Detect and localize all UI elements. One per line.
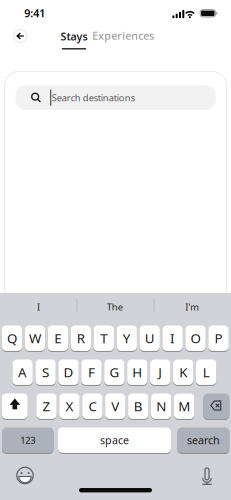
button[interactable]: L: [196, 359, 216, 385]
staticText: L: [203, 363, 210, 381]
button[interactable]: search: [177, 427, 229, 453]
button[interactable]: Stays: [60, 29, 87, 49]
button[interactable]: Z: [36, 393, 57, 419]
staticText: E: [54, 329, 61, 347]
button[interactable]: E: [48, 325, 68, 351]
staticText: I: [37, 301, 40, 313]
button[interactable]: H: [127, 359, 147, 385]
staticText: 123: [20, 434, 35, 446]
staticText: R: [77, 329, 85, 347]
staticText: N: [156, 397, 166, 415]
staticText: I'm: [185, 301, 199, 313]
staticText: P: [214, 329, 222, 347]
button[interactable]: D: [58, 359, 79, 385]
staticText: W: [29, 329, 41, 347]
button[interactable]: Shift: [2, 393, 28, 419]
button[interactable]: V: [105, 393, 125, 419]
button[interactable]: Q: [2, 325, 22, 351]
button[interactable]: W: [25, 325, 45, 351]
button[interactable]: M: [174, 393, 194, 419]
button[interactable]: space: [58, 427, 171, 453]
staticText: Q: [7, 329, 17, 347]
button[interactable]: K: [173, 359, 193, 385]
button[interactable]: Back: [14, 29, 27, 42]
staticText: G: [109, 363, 119, 381]
button[interactable]: T: [93, 325, 114, 351]
staticText: K: [179, 363, 187, 381]
staticText: H: [132, 363, 142, 381]
staticText: Experiences: [92, 28, 154, 43]
staticText: C: [88, 397, 96, 415]
staticText: M: [178, 397, 190, 415]
button[interactable]: Dictation: [199, 467, 215, 485]
button[interactable]: F: [81, 359, 102, 385]
staticText: O: [190, 329, 200, 347]
button[interactable]: Experiences: [92, 28, 154, 43]
button[interactable]: S: [35, 359, 56, 385]
button[interactable]: C: [82, 393, 103, 419]
staticText: The: [107, 301, 123, 313]
staticText: X: [65, 397, 73, 415]
button[interactable]: Search destinations: [15, 85, 216, 110]
staticText: T: [100, 329, 107, 347]
staticText: search: [187, 433, 220, 447]
staticText: I: [170, 329, 175, 347]
staticText: F: [88, 363, 95, 381]
staticText: J: [158, 363, 162, 381]
button[interactable]: U: [139, 325, 160, 351]
button[interactable]: I'm: [155, 297, 229, 317]
staticText: Search destinations: [52, 91, 135, 104]
button[interactable]: B: [128, 393, 148, 419]
staticText: D: [63, 363, 73, 381]
staticText: V: [111, 397, 119, 415]
button[interactable]: P: [208, 325, 229, 351]
staticText: Z: [42, 397, 50, 415]
button[interactable]: N: [151, 393, 171, 419]
button[interactable]: The: [78, 297, 152, 317]
staticText: space: [100, 433, 129, 447]
staticText: B: [134, 397, 143, 415]
button[interactable]: 123: [2, 427, 53, 453]
staticText: 9:41: [24, 6, 45, 20]
staticText: S: [42, 363, 49, 381]
button[interactable]: G: [104, 359, 125, 385]
staticText: Y: [123, 329, 131, 347]
button[interactable]: Y: [116, 325, 137, 351]
button[interactable]: I: [162, 325, 183, 351]
button[interactable]: Emoji: [15, 466, 35, 485]
staticText: A: [18, 363, 27, 381]
button[interactable]: R: [71, 325, 91, 351]
button[interactable]: Delete: [203, 393, 229, 419]
staticText: Stays: [60, 29, 87, 44]
button[interactable]: J: [150, 359, 170, 385]
button[interactable]: O: [185, 325, 206, 351]
button[interactable]: X: [59, 393, 80, 419]
button[interactable]: A: [12, 359, 33, 385]
button[interactable]: I: [1, 297, 75, 317]
staticText: U: [145, 329, 155, 347]
